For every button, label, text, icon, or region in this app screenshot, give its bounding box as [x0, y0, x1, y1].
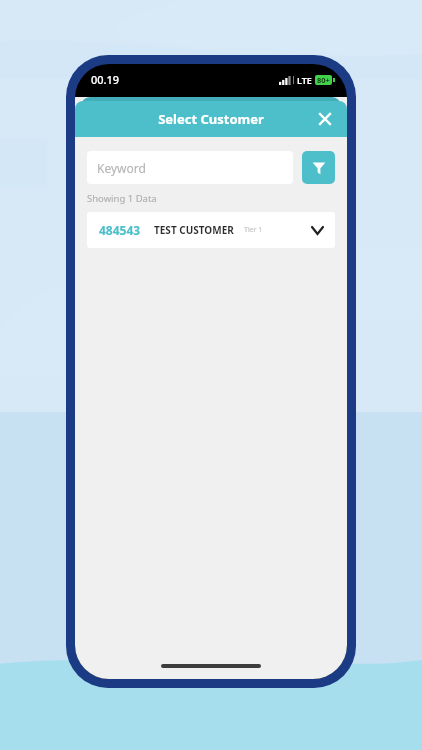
staticText: 00.19	[91, 72, 120, 87]
staticText: TEST CUSTOMER	[154, 223, 234, 237]
staticText: LTE	[297, 74, 312, 86]
button[interactable]: Keyword	[87, 151, 293, 184]
staticText: Keyword	[97, 160, 146, 176]
button[interactable]: Filter	[302, 151, 335, 184]
staticText: 80+	[317, 75, 330, 85]
staticText: 484543	[99, 222, 141, 238]
staticText: Showing 1 Data	[87, 192, 157, 205]
button[interactable]: Close	[311, 105, 339, 133]
staticText: Select Customer	[158, 110, 264, 128]
staticText: Tier 1	[244, 225, 263, 235]
button[interactable]: 484543	[87, 212, 335, 248]
